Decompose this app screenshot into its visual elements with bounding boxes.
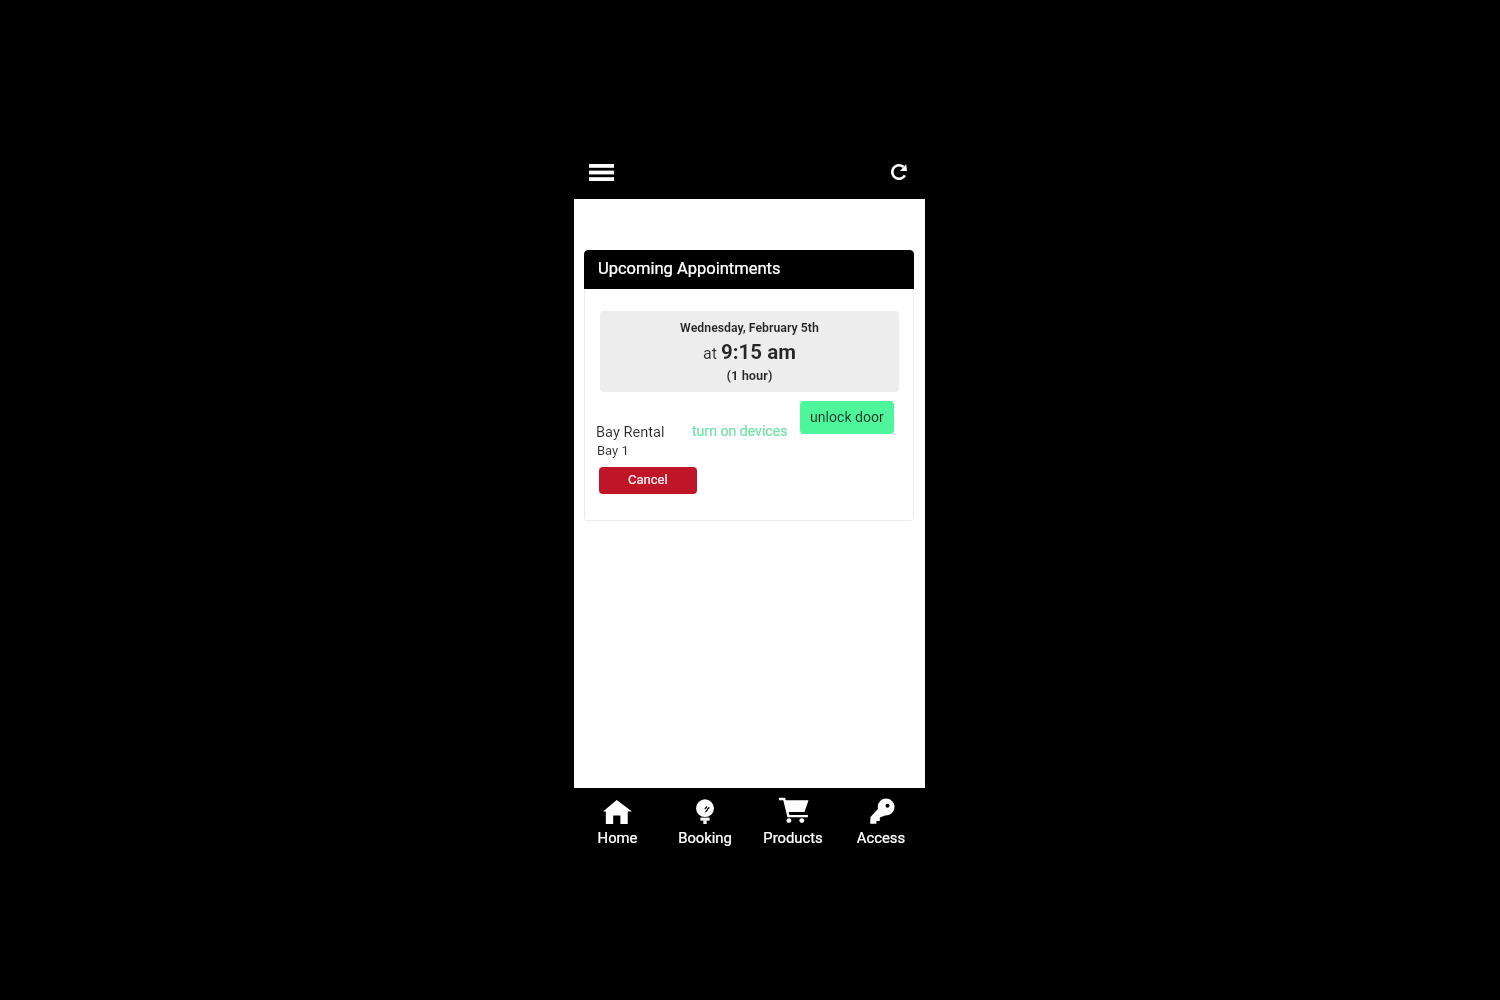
staticText: unlock door xyxy=(810,409,884,426)
staticText: Bay 1 xyxy=(597,443,629,458)
staticText: Upcoming Appointments xyxy=(598,259,781,278)
button[interactable]: unlock door xyxy=(800,401,894,434)
staticText: Cancel xyxy=(628,472,668,487)
staticText: Booking xyxy=(661,829,749,846)
staticText: at xyxy=(703,344,721,363)
staticText: Access xyxy=(837,829,925,846)
button[interactable]: Access xyxy=(837,788,925,856)
button[interactable]: Home xyxy=(574,788,661,856)
staticText: (1 hour) xyxy=(600,368,899,383)
staticText: 9:15 am xyxy=(721,340,796,364)
staticText: Home xyxy=(574,829,661,846)
staticText: Wednesday, February 5th xyxy=(600,321,899,335)
button[interactable]: Booking xyxy=(661,788,749,856)
button[interactable]: Products xyxy=(749,788,837,856)
button[interactable]: Refresh xyxy=(877,150,921,194)
button[interactable]: Open navigation menu xyxy=(578,147,624,197)
staticText: Products xyxy=(749,829,837,846)
button[interactable]: Cancel xyxy=(599,467,697,494)
staticText: Bay Rental xyxy=(596,423,665,440)
button[interactable]: turn on devices xyxy=(692,423,788,440)
